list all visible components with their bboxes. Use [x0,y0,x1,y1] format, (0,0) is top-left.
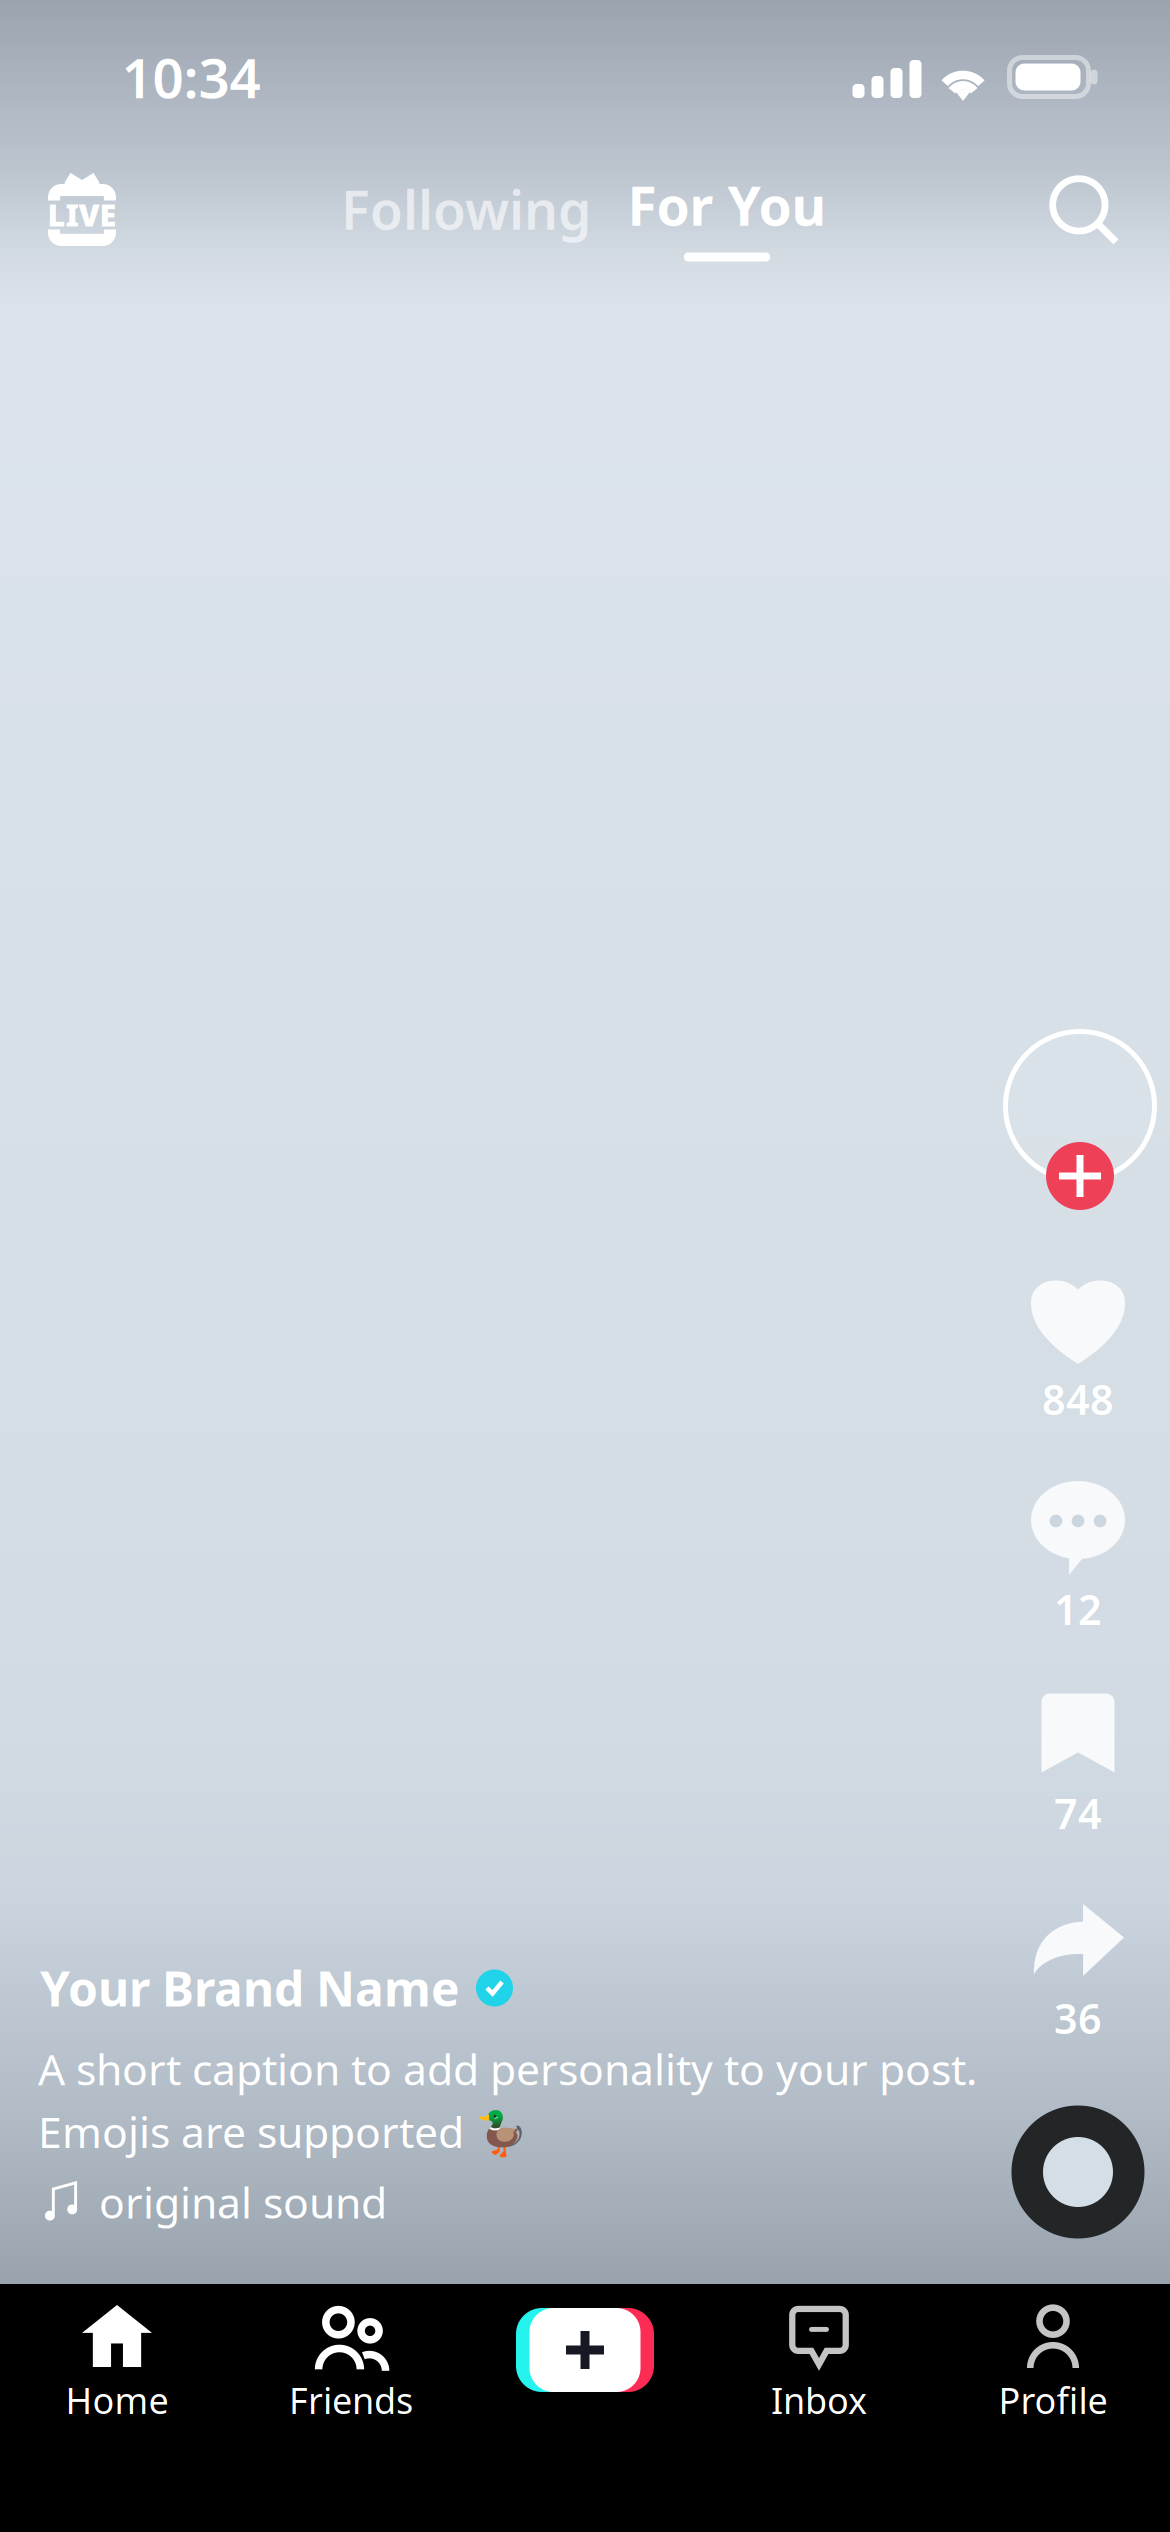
staticText: original sound [99,2174,387,2230]
button[interactable]: Sound [1005,2099,1151,2245]
button[interactable]: Like [1013,1278,1143,1438]
staticText: 12 [1054,1582,1102,1636]
staticText: A short caption to add personality to yo… [38,2040,977,2097]
staticText: LIVE [47,194,116,235]
button[interactable]: For You [617,145,837,305]
staticText: For You [627,170,826,240]
button[interactable]: Share [1013,1900,1143,2060]
button[interactable]: Inbox [702,2284,936,2464]
staticText: Home [65,2376,168,2424]
staticText: Inbox [771,2376,867,2424]
button[interactable]: Follow [1000,1026,1160,1252]
staticText: Following [341,174,591,244]
staticText: 36 [1054,1991,1102,2045]
staticText: 10:34 [121,41,260,113]
button[interactable]: Search [1030,153,1140,269]
staticText: 848 [1042,1372,1114,1426]
staticText: Emojis are supported 🦆 [38,2103,528,2160]
button[interactable]: Friends [234,2284,468,2464]
staticText: Profile [998,2376,1107,2424]
button[interactable]: Create [468,2260,702,2440]
button[interactable]: Profile [936,2284,1170,2464]
button[interactable]: Home [0,2284,234,2464]
button[interactable]: Following [331,151,601,267]
staticText: Friends [289,2376,413,2424]
staticText: Your Brand Name [40,1956,460,2020]
button[interactable]: LIVE [27,151,137,267]
button[interactable]: Save [1013,1693,1143,1853]
staticText: 74 [1054,1786,1102,1840]
button[interactable]: Comments [1013,1482,1143,1642]
